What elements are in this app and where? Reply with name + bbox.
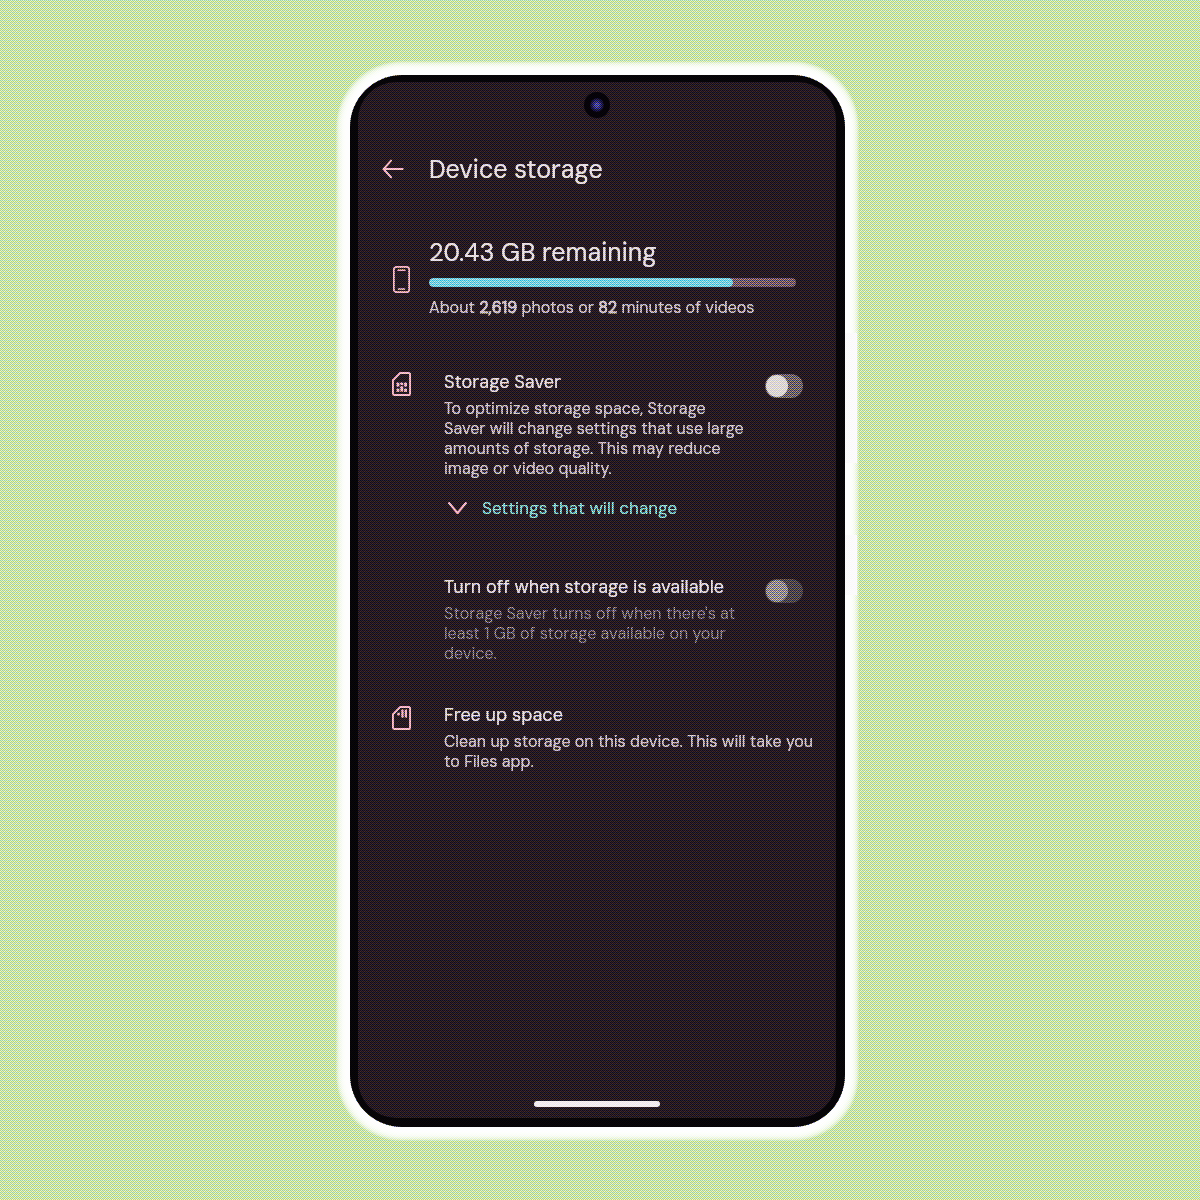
staticText: Storage Saver	[444, 370, 561, 393]
button[interactable]: Back	[369, 145, 417, 193]
staticText: To optimize storage space, Storage Saver…	[444, 398, 744, 479]
button[interactable]: Settings that will change	[448, 497, 678, 519]
staticText: Turn off when storage is available	[444, 575, 725, 598]
staticText: Settings that will change	[482, 497, 678, 519]
staticText: Storage Saver turns off when there's at …	[444, 603, 739, 664]
staticText: Clean up storage on this device. This wi…	[444, 731, 818, 772]
button[interactable]: Storage Saver	[358, 370, 836, 479]
staticText: About 2,619 photos or 82 minutes of vide…	[429, 297, 755, 318]
staticText: 20.43 GB remaining	[429, 236, 657, 269]
button[interactable]: Free up space	[358, 703, 836, 772]
button[interactable]: Storage Saver toggle	[765, 579, 803, 603]
button[interactable]: Storage Saver toggle	[765, 374, 803, 398]
staticText: Device storage	[429, 153, 603, 186]
button[interactable]: Turn off when storage is available	[358, 575, 836, 664]
staticText: Free up space	[444, 703, 563, 726]
